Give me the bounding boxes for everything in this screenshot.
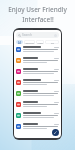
button[interactable]: Work	[36, 40, 44, 44]
staticText: Interface!!	[22, 15, 54, 24]
button[interactable]	[14, 89, 61, 100]
button[interactable]: Compose	[52, 129, 59, 136]
button[interactable]: Search	[16, 32, 59, 38]
button[interactable]: Account	[54, 34, 57, 37]
staticText: So	[51, 41, 54, 44]
button[interactable]	[14, 122, 61, 133]
staticText: Search	[22, 33, 32, 37]
button[interactable]	[14, 45, 61, 56]
button[interactable]: All	[16, 40, 23, 44]
button[interactable]: So	[45, 40, 59, 44]
staticText: Enjoy User Friendly	[8, 5, 67, 14]
button[interactable]	[14, 100, 61, 111]
button[interactable]	[14, 78, 61, 89]
staticText: Personal	[24, 41, 35, 44]
button[interactable]	[14, 111, 61, 122]
button[interactable]	[14, 67, 61, 78]
button[interactable]: Personal	[24, 40, 35, 44]
staticText: All	[18, 41, 21, 44]
button[interactable]	[14, 56, 61, 67]
staticText: Work	[37, 41, 44, 44]
